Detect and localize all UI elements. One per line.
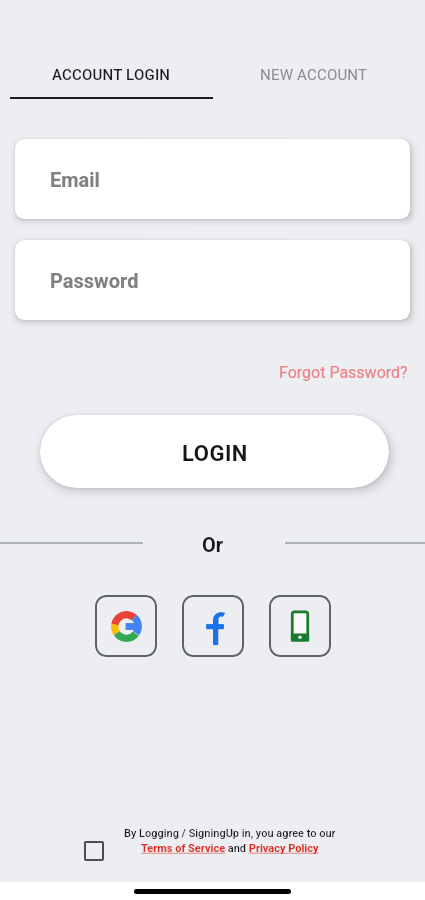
button[interactable]: Sign in with Google xyxy=(95,595,157,657)
staticText: Email xyxy=(50,168,100,191)
button[interactable]: Sign in with phone number xyxy=(269,595,331,657)
button[interactable]: Email xyxy=(15,139,410,219)
button[interactable]: Accept terms and conditions xyxy=(84,841,104,861)
staticText: Password xyxy=(50,269,139,292)
button[interactable]: NEW ACCOUNT xyxy=(212,51,415,99)
button[interactable]: LOGIN xyxy=(40,415,389,488)
button[interactable]: Forgot Password? xyxy=(279,363,408,382)
button[interactable]: Sign in with Facebook xyxy=(182,595,244,657)
staticText: Or xyxy=(202,533,224,555)
button[interactable]: Password xyxy=(15,240,410,320)
staticText: ACCOUNT LOGIN xyxy=(52,66,171,84)
button[interactable]: ACCOUNT LOGIN xyxy=(10,51,212,99)
button[interactable]: Terms of Service and Privacy Policy xyxy=(141,842,319,855)
staticText: By Logging / SigningUp in, you agree to … xyxy=(124,827,336,840)
staticText: LOGIN xyxy=(182,441,248,467)
staticText: NEW ACCOUNT xyxy=(260,66,368,84)
